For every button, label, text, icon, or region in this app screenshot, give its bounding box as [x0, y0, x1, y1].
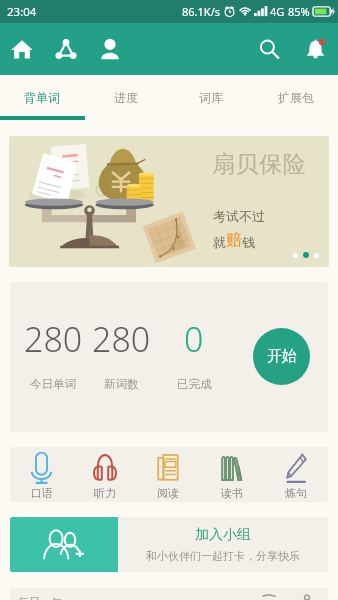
staticText: 280 — [24, 316, 83, 362]
staticText: 加入小组 — [195, 526, 251, 544]
button[interactable]: 炼句 — [264, 447, 328, 502]
button[interactable]: 背单词 — [0, 75, 84, 120]
button[interactable]: 扇贝保险 — [9, 136, 329, 267]
staticText: 赔 — [226, 230, 242, 250]
button[interactable]: 口语 — [10, 447, 73, 502]
button[interactable]: Discover — [44, 23, 88, 75]
staticText: 口语 — [31, 486, 53, 500]
button[interactable]: 进度 — [84, 75, 168, 120]
staticText: 就 — [213, 234, 226, 250]
button[interactable]: Notifications — [292, 23, 338, 75]
button[interactable]: 加入小组 — [10, 517, 328, 572]
staticText: 词库 — [199, 90, 223, 105]
staticText: 考试不过 — [213, 208, 265, 224]
button[interactable]: Home — [0, 23, 44, 75]
staticText: 85% — [288, 4, 310, 19]
button[interactable]: 听力 — [73, 447, 136, 502]
staticText: 23:04 — [7, 4, 37, 20]
staticText: 每日一句 — [18, 595, 62, 600]
staticText: 今日单词 — [30, 377, 76, 391]
staticText: 阅读 — [157, 486, 179, 500]
staticText: 0 — [184, 316, 204, 362]
staticText: 扩展包 — [278, 90, 314, 105]
staticText: 和小伙伴们一起打卡，分享快乐 — [146, 549, 300, 563]
button[interactable]: Search — [246, 23, 292, 75]
staticText: 开始 — [267, 347, 297, 366]
button[interactable]: 读书 — [200, 447, 264, 502]
staticText: 已完成 — [177, 377, 212, 391]
button[interactable]: 词库 — [168, 75, 253, 120]
button[interactable]: Profile — [88, 23, 132, 75]
staticText: 背单词 — [24, 90, 60, 105]
staticText: 钱 — [242, 234, 255, 250]
staticText: 280 — [92, 316, 151, 362]
button[interactable]: 扩展包 — [253, 75, 338, 120]
button[interactable]: 阅读 — [136, 447, 200, 502]
staticText: 听力 — [94, 486, 116, 500]
staticText: 4G — [270, 4, 285, 19]
button[interactable]: 开始 — [253, 328, 310, 385]
staticText: 扇贝保险 — [212, 150, 307, 179]
staticText: 86.1K/s — [182, 4, 220, 19]
staticText: 进度 — [114, 90, 138, 105]
staticText: 新词数 — [104, 377, 139, 391]
staticText: 读书 — [221, 486, 243, 500]
staticText: 炼句 — [285, 486, 307, 500]
